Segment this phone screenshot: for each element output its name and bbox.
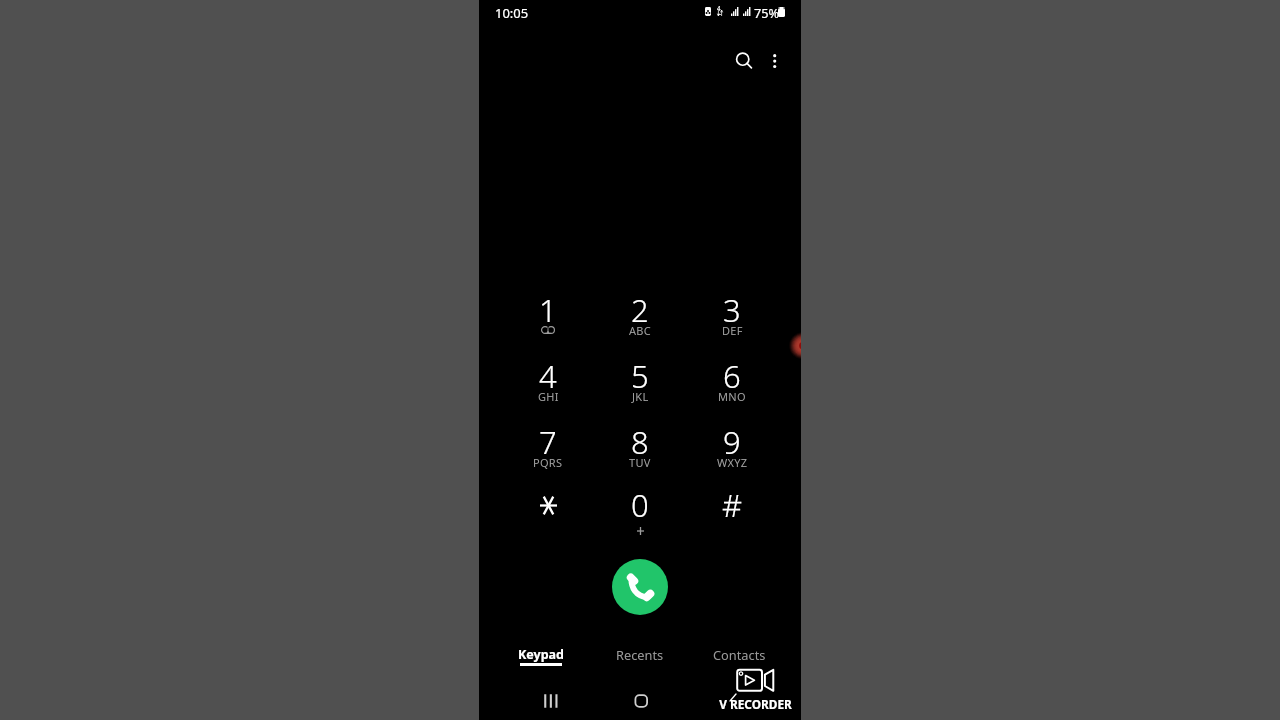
button[interactable]: 9 [686, 421, 778, 483]
button[interactable]: Star [502, 484, 594, 546]
staticText: ABC [629, 323, 652, 338]
button[interactable]: 4 [502, 355, 594, 417]
button[interactable]: 3 [686, 289, 778, 351]
staticText: 8 [631, 421, 649, 455]
staticText: 6 [723, 355, 741, 389]
staticText: GHI [538, 389, 559, 404]
staticText: Contacts [713, 646, 766, 663]
staticText: TUV [629, 455, 651, 470]
staticText: WXYZ [717, 455, 748, 470]
staticText: 3 [723, 289, 741, 323]
staticText: 4G [717, 4, 724, 15]
staticText: 9 [723, 421, 741, 455]
staticText: 7 [539, 421, 557, 455]
button[interactable]: Keypad [495, 646, 587, 674]
staticText: 10:05 [495, 4, 529, 22]
staticText: # [722, 484, 743, 518]
staticText: V RECORDER [719, 696, 792, 712]
button[interactable]: Search [729, 46, 757, 74]
button[interactable]: Home [627, 688, 653, 714]
button[interactable]: # [686, 484, 778, 546]
button[interactable]: Recents [594, 646, 686, 674]
button[interactable]: 7 [502, 421, 594, 483]
button[interactable]: 8 [594, 421, 686, 483]
button[interactable]: 1 [502, 289, 594, 351]
staticText: JKL [632, 389, 649, 404]
staticText: 75% [754, 4, 780, 21]
button[interactable]: Call [612, 559, 668, 615]
staticText: 2 [631, 289, 649, 323]
staticText: 4 [539, 355, 557, 389]
button[interactable]: Contacts [693, 646, 785, 674]
button[interactable]: 0 [594, 484, 686, 546]
button[interactable]: 2 [594, 289, 686, 351]
staticText: DEF [722, 323, 743, 338]
staticText: 0 [631, 484, 649, 518]
staticText: Recents [616, 646, 664, 663]
staticText: 1 [539, 289, 557, 323]
button[interactable]: More options [761, 46, 789, 74]
button[interactable]: 5 [594, 355, 686, 417]
staticText: 5 [631, 355, 649, 389]
button[interactable]: 6 [686, 355, 778, 417]
button[interactable]: Recent apps [538, 688, 564, 714]
staticText: Keypad [518, 646, 564, 663]
staticText: PQRS [533, 455, 563, 470]
staticText: MNO [718, 389, 746, 404]
